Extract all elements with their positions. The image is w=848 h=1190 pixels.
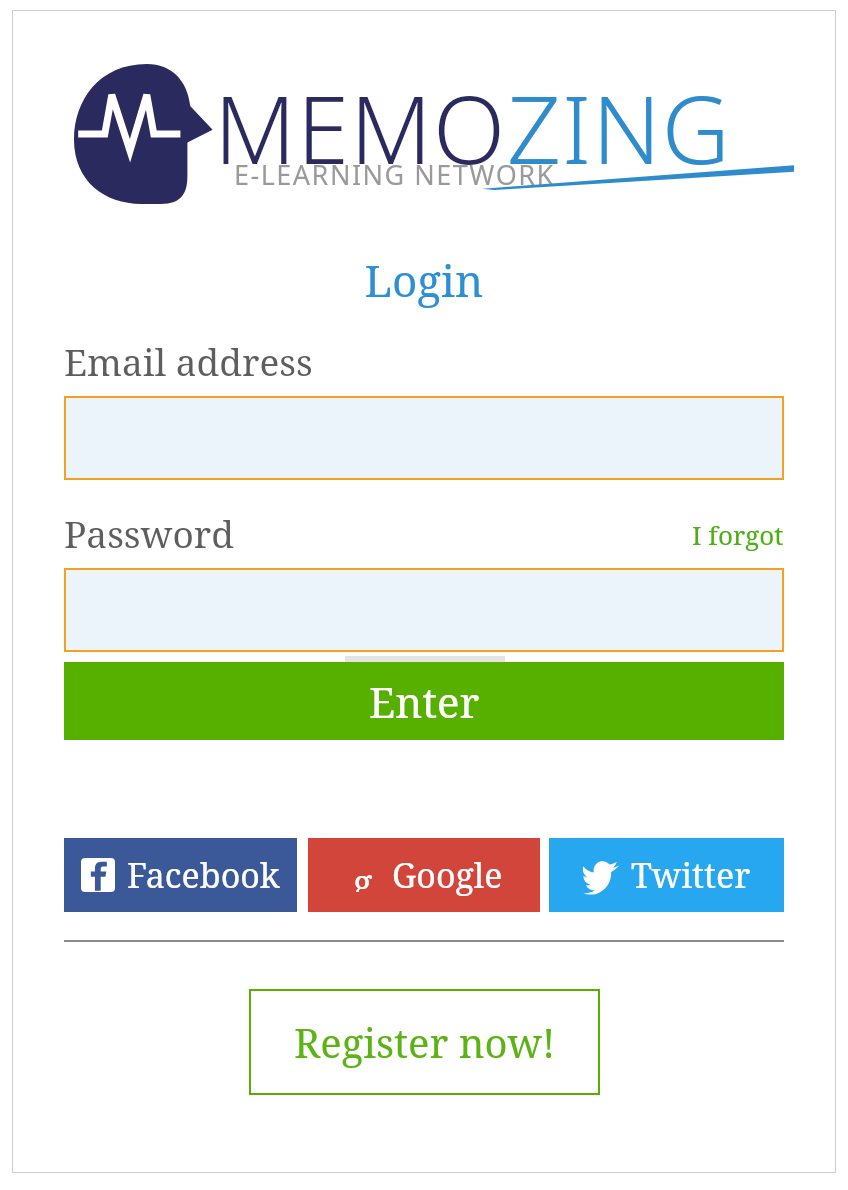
staticText: ZING: [507, 64, 731, 192]
staticText: E-LEARNING NETWORK: [234, 156, 555, 193]
staticText: Register now!: [294, 1015, 556, 1069]
other: Facebook: [81, 858, 115, 892]
staticText: Email address: [64, 336, 313, 386]
staticText: Google: [392, 852, 503, 898]
staticText: Password: [64, 508, 234, 558]
button[interactable]: Google: [308, 838, 540, 912]
button[interactable]: Register now!: [249, 989, 600, 1095]
other: Twitter: [583, 857, 619, 893]
button[interactable]: I forgot: [692, 517, 784, 558]
staticText: Enter: [369, 673, 480, 730]
staticText: Twitter: [631, 852, 751, 898]
staticText: I forgot: [692, 517, 784, 552]
button[interactable]: Enter: [64, 662, 784, 740]
staticText: Facebook: [127, 852, 280, 898]
button[interactable]: [64, 568, 784, 652]
button[interactable]: [64, 396, 784, 480]
other: Google: [346, 858, 380, 892]
staticText: MEMO: [214, 64, 507, 192]
button[interactable]: Facebook: [64, 838, 297, 912]
staticText: g: [353, 858, 373, 892]
button[interactable]: Twitter: [549, 838, 784, 912]
staticText: Login: [0, 250, 848, 310]
